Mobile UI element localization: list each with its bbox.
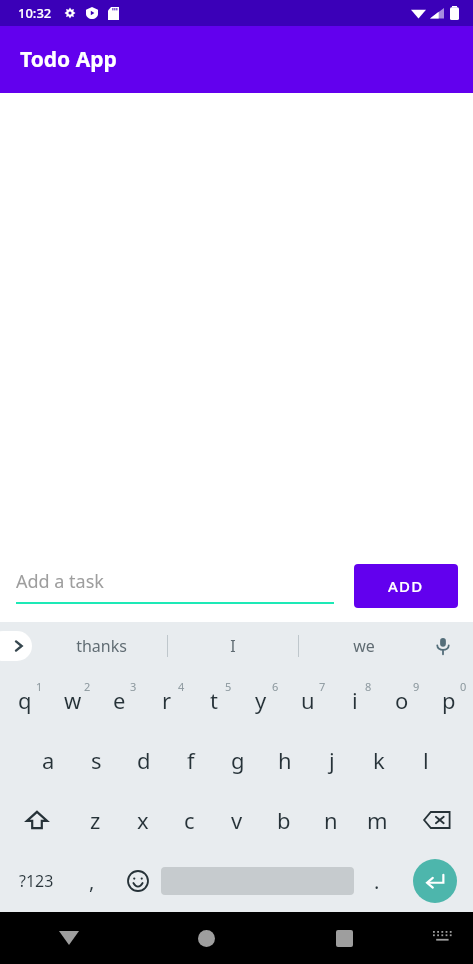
staticText: r <box>162 685 172 715</box>
staticText: x <box>137 805 149 835</box>
button[interactable]: q <box>1 670 49 730</box>
button[interactable]: , <box>69 850 115 912</box>
button[interactable]: s <box>72 730 120 790</box>
button[interactable]: i <box>331 670 378 730</box>
staticText: 0 <box>460 679 467 694</box>
staticText: m <box>367 805 388 835</box>
button[interactable]: Back <box>0 912 137 964</box>
button[interactable]: Emoji <box>115 850 161 912</box>
button[interactable]: z <box>72 790 119 850</box>
button[interactable]: Backspace <box>401 790 472 850</box>
button[interactable]: Enter <box>400 850 469 912</box>
button[interactable]: ?123 <box>4 850 69 912</box>
staticText: z <box>90 805 101 835</box>
staticText: . <box>374 868 380 895</box>
staticText: o <box>395 685 409 715</box>
button[interactable]: w <box>49 670 96 730</box>
staticText: i <box>352 685 358 715</box>
button[interactable]: Expand suggestions <box>0 631 32 661</box>
staticText: e <box>113 685 126 715</box>
button[interactable]: ADD <box>354 564 458 608</box>
button[interactable]: . <box>354 850 400 912</box>
staticText: s <box>91 745 102 775</box>
button[interactable]: Switch keyboard <box>413 912 473 964</box>
staticText: 8 <box>365 679 372 694</box>
button[interactable]: Voice input <box>425 628 461 664</box>
staticText: , <box>89 868 95 895</box>
staticText: v <box>231 805 243 835</box>
staticText: 1 <box>36 679 43 694</box>
staticText: ?123 <box>19 870 54 892</box>
staticText: 7 <box>319 679 326 694</box>
button[interactable]: v <box>213 790 260 850</box>
button[interactable]: n <box>307 790 354 850</box>
staticText: 4 <box>178 679 185 694</box>
staticText: we <box>353 635 375 657</box>
staticText: ADD <box>388 576 424 596</box>
button[interactable]: b <box>260 790 307 850</box>
staticText: l <box>423 745 429 775</box>
staticText: p <box>442 685 456 715</box>
button[interactable]: d <box>120 730 167 790</box>
button[interactable]: Add a task <box>16 569 334 604</box>
button[interactable]: Recent apps <box>275 912 413 964</box>
staticText: Add a task <box>16 569 104 594</box>
button[interactable]: x <box>119 790 166 850</box>
staticText: k <box>373 745 385 775</box>
staticText: a <box>42 745 55 775</box>
button[interactable]: t <box>190 670 237 730</box>
staticText: 10:32 <box>18 4 52 22</box>
button[interactable]: l <box>402 730 449 790</box>
staticText: 9 <box>413 679 420 694</box>
staticText: 6 <box>272 679 279 694</box>
staticText: 3 <box>130 679 137 694</box>
staticText: b <box>277 805 291 835</box>
staticText: y <box>255 685 267 715</box>
staticText: I <box>230 635 236 657</box>
button[interactable]: m <box>354 790 401 850</box>
staticText: u <box>301 685 315 715</box>
button[interactable]: o <box>378 670 425 730</box>
button[interactable]: f <box>167 730 214 790</box>
staticText: Todo App <box>20 45 117 74</box>
button[interactable]: j <box>308 730 355 790</box>
staticText: 2 <box>84 679 91 694</box>
staticText: q <box>18 685 32 715</box>
staticText: n <box>324 805 338 835</box>
button[interactable]: we <box>299 622 429 670</box>
button[interactable]: u <box>284 670 331 730</box>
staticText: j <box>329 745 335 775</box>
button[interactable]: a <box>24 730 72 790</box>
staticText: t <box>210 685 218 715</box>
button[interactable]: r <box>143 670 190 730</box>
button[interactable]: e <box>96 670 143 730</box>
staticText: f <box>187 745 195 775</box>
button[interactable]: c <box>166 790 213 850</box>
staticText: 5 <box>225 679 232 694</box>
staticText: g <box>231 745 245 775</box>
button[interactable]: p <box>425 670 472 730</box>
staticText: h <box>278 745 292 775</box>
staticText: d <box>137 745 151 775</box>
button[interactable]: I <box>168 622 298 670</box>
button[interactable]: Shift <box>1 790 72 850</box>
staticText: thanks <box>76 635 127 657</box>
button[interactable]: y <box>237 670 284 730</box>
staticText: c <box>184 805 195 835</box>
button[interactable]: thanks <box>36 622 167 670</box>
button[interactable]: k <box>355 730 402 790</box>
button[interactable]: h <box>261 730 308 790</box>
button[interactable]: Home <box>137 912 275 964</box>
button[interactable]: g <box>214 730 261 790</box>
staticText: w <box>64 685 82 715</box>
